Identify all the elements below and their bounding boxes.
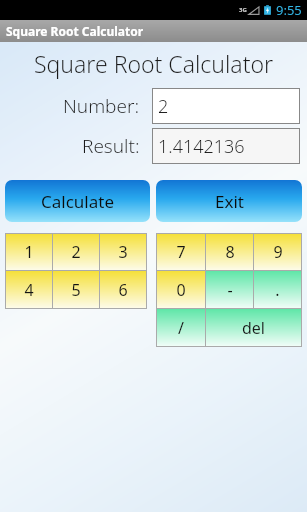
- button[interactable]: del: [206, 309, 301, 346]
- button[interactable]: /: [157, 309, 205, 346]
- staticText: 2: [71, 241, 81, 263]
- staticText: del: [242, 317, 265, 339]
- staticText: 1: [24, 241, 34, 263]
- button[interactable]: 7: [157, 234, 205, 270]
- staticText: 1.4142136: [158, 134, 245, 159]
- staticText: /: [178, 317, 184, 339]
- staticText: Exit: [215, 190, 244, 213]
- button[interactable]: .: [254, 271, 301, 308]
- staticText: -: [227, 279, 233, 301]
- staticText: 4: [24, 279, 34, 301]
- button[interactable]: 2: [153, 89, 299, 123]
- button[interactable]: -: [206, 271, 253, 308]
- button[interactable]: Calculate: [5, 180, 150, 222]
- staticText: 9: [273, 241, 283, 263]
- staticText: 9:55: [276, 1, 302, 19]
- staticText: Square Root Calculator: [6, 23, 144, 39]
- staticText: 8: [225, 241, 235, 263]
- staticText: 5: [71, 279, 81, 301]
- staticText: 2: [158, 94, 169, 119]
- staticText: 0: [176, 279, 186, 301]
- staticText: Number:: [63, 93, 140, 119]
- button[interactable]: 9: [254, 234, 301, 270]
- staticText: Square Root Calculator: [34, 48, 274, 79]
- staticText: 3G: [239, 6, 247, 14]
- button[interactable]: 1: [6, 234, 52, 270]
- button[interactable]: 8: [206, 234, 253, 270]
- staticText: 3: [118, 241, 128, 263]
- button[interactable]: 0: [157, 271, 205, 308]
- button[interactable]: 2: [53, 234, 99, 270]
- button[interactable]: 1.4142136: [153, 129, 299, 163]
- staticText: 6: [118, 279, 128, 301]
- button[interactable]: Exit: [156, 180, 302, 222]
- button[interactable]: 5: [53, 271, 99, 308]
- button[interactable]: 3: [100, 234, 146, 270]
- staticText: 7: [176, 241, 186, 263]
- button[interactable]: 4: [6, 271, 52, 308]
- staticText: Calculate: [41, 190, 114, 213]
- button[interactable]: 6: [100, 271, 146, 308]
- staticText: .: [275, 279, 280, 301]
- staticText: Result:: [82, 133, 140, 159]
